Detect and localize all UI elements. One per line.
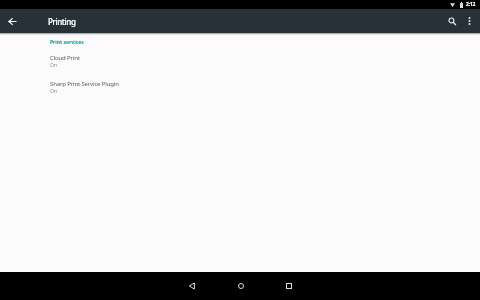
staticText: 2:12 — [466, 1, 476, 8]
button[interactable] — [462, 12, 476, 30]
staticText: Cloud Print — [50, 54, 80, 62]
button[interactable]: Cloud Print — [0, 47, 480, 73]
button[interactable] — [182, 276, 202, 296]
button[interactable] — [0, 9, 24, 33]
staticText: Print services — [50, 39, 84, 46]
button[interactable] — [279, 276, 299, 296]
staticText: Printing — [48, 16, 76, 27]
staticText: On — [50, 88, 57, 95]
button[interactable] — [231, 276, 251, 296]
staticText: On — [50, 62, 57, 69]
button[interactable] — [446, 12, 458, 30]
button[interactable]: Sharp Print Service Plugin — [0, 73, 480, 100]
staticText: Sharp Print Service Plugin — [50, 80, 119, 88]
